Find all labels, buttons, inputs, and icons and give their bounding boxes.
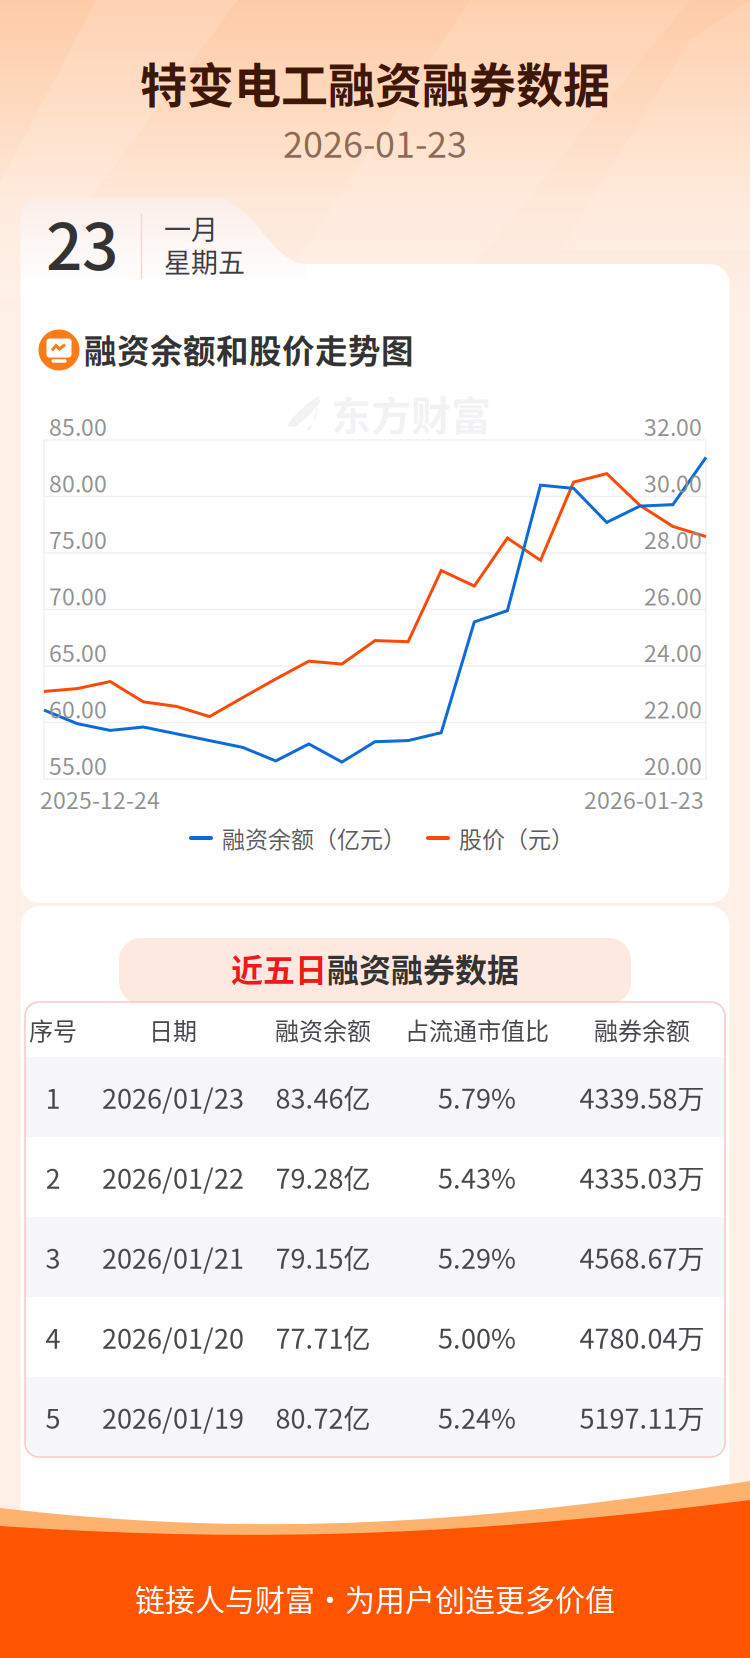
staticText: 80.72亿 — [275, 1397, 370, 1437]
staticText: 55.00 — [49, 748, 107, 782]
staticText: 4335.03万 — [579, 1157, 704, 1197]
staticText: 85.00 — [49, 409, 107, 443]
staticText: 日期 — [149, 1012, 197, 1047]
staticText: 20.00 — [644, 748, 702, 782]
staticText: 28.00 — [644, 522, 702, 556]
staticText: 5.24% — [438, 1397, 516, 1437]
staticText: 星期五 — [164, 241, 245, 281]
staticText: 序号 — [29, 1012, 77, 1047]
staticText: 5 — [45, 1397, 60, 1437]
staticText: 3 — [45, 1237, 60, 1277]
staticText: 2026/01/19 — [102, 1397, 244, 1437]
staticText: 5.29% — [438, 1237, 516, 1277]
staticText: 83.46亿 — [275, 1077, 370, 1117]
staticText: 2026/01/23 — [102, 1077, 244, 1117]
staticText: 东方财富 — [331, 384, 491, 442]
staticText: 5.43% — [438, 1157, 516, 1197]
staticText: 1 — [45, 1077, 60, 1117]
staticText: 80.00 — [49, 466, 107, 499]
staticText: 5197.11万 — [579, 1397, 704, 1437]
staticText: 5.79% — [438, 1077, 516, 1117]
staticText: 77.71亿 — [275, 1317, 370, 1357]
staticText: 近五日 — [231, 945, 327, 991]
staticText: 融资余额 — [275, 1012, 371, 1047]
staticText: 4339.58万 — [579, 1077, 704, 1117]
staticText: 30.00 — [644, 466, 702, 499]
staticText: 占流通市值比 — [405, 1012, 549, 1047]
staticText: 4780.04万 — [579, 1317, 704, 1357]
staticText: 79.15亿 — [275, 1237, 370, 1277]
staticText: 链接人与财富·为用户创造更多价值 — [135, 1576, 615, 1620]
staticText: 75.00 — [49, 522, 107, 556]
staticText: 23 — [46, 196, 118, 288]
staticText: 24.00 — [644, 635, 702, 669]
staticText: 32.00 — [644, 409, 702, 443]
staticText: 22.00 — [644, 692, 702, 725]
staticText: 2026-01-23 — [283, 116, 467, 168]
staticText: 70.00 — [49, 579, 107, 612]
staticText: 4568.67万 — [579, 1237, 704, 1277]
staticText: 65.00 — [49, 635, 107, 669]
staticText: 一月 — [164, 208, 218, 248]
staticText: 4 — [45, 1317, 60, 1357]
staticText: 2026-01-23 — [584, 782, 704, 816]
staticText: 2 — [45, 1157, 60, 1197]
staticText: 特变电工融资融券数据 — [140, 48, 610, 116]
staticText: 融资余额和股价走势图 — [84, 325, 414, 373]
staticText: 79.28亿 — [275, 1157, 370, 1197]
staticText: 5.00% — [438, 1317, 516, 1357]
staticText: 融资融券数据 — [327, 945, 519, 991]
staticText: 2026/01/21 — [102, 1237, 244, 1277]
staticText: 融资余额（亿元） — [222, 821, 406, 855]
staticText: 26.00 — [644, 579, 702, 612]
staticText: 2026/01/20 — [102, 1317, 244, 1357]
staticText: 融券余额 — [594, 1012, 690, 1047]
staticText: 2026/01/22 — [102, 1157, 244, 1197]
staticText: 股价（元） — [459, 821, 574, 855]
staticText: 2025-12-24 — [40, 782, 160, 816]
staticText: 60.00 — [49, 692, 107, 725]
